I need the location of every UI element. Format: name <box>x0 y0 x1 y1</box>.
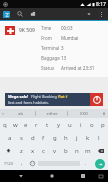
button[interactable]: , <box>17 157 27 170</box>
staticText: n <box>75 147 79 155</box>
staticText: r <box>35 121 38 129</box>
staticText: 13 <box>61 55 67 61</box>
button[interactable]: Filter <box>84 9 94 19</box>
staticText: 8:17 <box>96 1 106 8</box>
staticText: From <box>41 35 61 41</box>
button[interactable]: n <box>71 144 82 157</box>
staticText: a <box>8 134 12 142</box>
button[interactable]: k <box>82 131 93 144</box>
staticText: fast and fares habitats. <box>8 100 49 105</box>
button[interactable]: i <box>75 118 86 131</box>
button[interactable]: Backspace <box>93 144 108 157</box>
staticText: Baggage <box>41 55 61 61</box>
button[interactable]: f <box>38 131 49 144</box>
button[interactable]: x <box>27 144 38 157</box>
staticText: either <box>46 111 58 116</box>
button[interactable]: b <box>60 144 71 157</box>
staticText: o <box>90 121 94 129</box>
staticText: > <box>2 111 5 116</box>
button[interactable]: r <box>31 118 42 131</box>
button[interactable]: d <box>27 131 38 144</box>
staticText: k <box>86 134 90 142</box>
staticText: w <box>13 121 18 129</box>
button[interactable]: v <box>49 144 60 157</box>
staticText: Arrived at 23:31 <box>61 65 95 71</box>
staticText: ab <box>18 111 23 116</box>
button[interactable]: c <box>38 144 49 157</box>
staticText: d <box>31 134 35 142</box>
button[interactable]: More options <box>96 9 106 19</box>
staticText: z <box>20 147 23 155</box>
staticText: ?123 <box>4 161 14 167</box>
button[interactable]: ?123 <box>0 157 17 170</box>
staticText: t <box>46 121 49 129</box>
staticText: h <box>64 134 68 142</box>
staticText: e <box>24 121 28 129</box>
button[interactable]: z <box>16 144 27 157</box>
button[interactable]: m <box>82 144 93 157</box>
button[interactable]: Enter <box>95 159 105 169</box>
staticText: i <box>80 121 82 129</box>
button[interactable]: e <box>20 118 31 131</box>
staticText: 9K 509 <box>19 27 35 34</box>
staticText: p <box>101 121 105 129</box>
button[interactable]: Shift <box>0 144 16 157</box>
button[interactable]: Keyboard switcher <box>96 171 106 181</box>
staticText: s <box>20 134 23 142</box>
button[interactable]: Search <box>15 9 25 19</box>
button[interactable]: EXO <box>68 109 99 118</box>
staticText: 3 <box>61 45 64 51</box>
button[interactable]: q <box>0 118 10 131</box>
staticText: Terminal <box>41 45 61 51</box>
staticText: Mumbai <box>61 35 79 41</box>
button[interactable]: p <box>97 118 108 131</box>
staticText: m <box>85 147 91 155</box>
staticText: EXO <box>80 111 88 116</box>
staticText: Flight Booking <box>31 94 58 99</box>
staticText: g <box>53 134 57 142</box>
button[interactable]: 9K 509 <box>0 21 108 77</box>
staticText: f <box>42 134 45 142</box>
button[interactable]: Flights <box>28 9 38 19</box>
button[interactable]: Recents <box>78 171 88 181</box>
button[interactable]: j <box>71 131 82 144</box>
button[interactable]: u <box>64 118 75 131</box>
staticText: flat ₹ <box>58 94 68 99</box>
button[interactable]: either <box>36 109 67 118</box>
staticText: Mega sale! <box>8 94 29 99</box>
button[interactable]: Voice input <box>99 109 108 118</box>
staticText: l <box>98 134 100 142</box>
button[interactable]: g <box>49 131 60 144</box>
button[interactable]: App <box>2 10 11 19</box>
button[interactable]: Emoji <box>27 157 37 170</box>
staticText: . <box>85 160 87 167</box>
button[interactable]: Home <box>47 171 57 181</box>
button[interactable]: t <box>42 118 53 131</box>
button[interactable]: s <box>16 131 27 144</box>
staticText: j <box>76 134 78 142</box>
staticText: c <box>42 147 45 155</box>
button[interactable]: ab <box>5 109 35 118</box>
button[interactable]: Back <box>16 171 26 181</box>
staticText: b <box>64 147 68 155</box>
button[interactable]: . <box>81 157 91 170</box>
staticText: q <box>3 121 7 129</box>
button[interactable]: h <box>60 131 71 144</box>
button[interactable]: o <box>86 118 97 131</box>
staticText: y <box>57 121 61 129</box>
staticText: u <box>68 121 72 129</box>
staticText: , <box>21 160 23 167</box>
button[interactable]: l <box>93 131 104 144</box>
button[interactable]: Mega sale! <box>5 93 103 106</box>
staticText: x <box>31 147 35 155</box>
staticText: Time <box>41 25 61 31</box>
staticText: 00:03 <box>61 25 73 31</box>
button[interactable]: w <box>10 118 20 131</box>
staticText: v <box>53 147 57 155</box>
staticText: Status <box>41 65 61 71</box>
button[interactable]: y <box>53 118 64 131</box>
button[interactable]: a <box>4 131 16 144</box>
